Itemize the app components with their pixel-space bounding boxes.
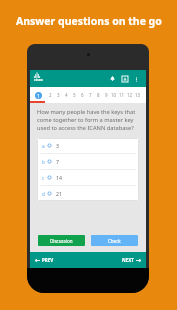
button[interactable]: NEXT	[120, 255, 143, 265]
staticText: d	[42, 191, 45, 197]
staticText: a	[42, 143, 45, 149]
staticText: 6	[81, 92, 84, 98]
button[interactable]: 12	[126, 87, 134, 103]
button[interactable]: Notifications	[106, 72, 119, 85]
staticText: 5	[73, 92, 76, 98]
staticText: Discussion	[50, 238, 73, 244]
staticText: 12	[127, 92, 133, 98]
staticText: Check	[108, 238, 121, 244]
staticText: cisco	[34, 77, 43, 82]
staticText: Answer questions on the go	[16, 14, 162, 28]
staticText: 8	[97, 92, 100, 98]
button[interactable]: 1	[31, 87, 46, 103]
button[interactable]: 10	[110, 87, 118, 103]
staticText: PREV	[42, 257, 54, 263]
button[interactable]: c	[37, 170, 139, 185]
button[interactable]: Check	[91, 235, 138, 246]
staticText: 10	[111, 92, 117, 98]
button[interactable]: Account	[119, 73, 131, 85]
staticText: 2	[49, 92, 52, 98]
staticText: c	[42, 175, 45, 181]
staticText: 7	[89, 92, 92, 98]
staticText: NEXT	[122, 257, 134, 263]
staticText: 13	[135, 92, 141, 98]
staticText: How many people have the keys that come …	[37, 108, 141, 132]
button[interactable]: 7	[86, 87, 94, 103]
staticText: 3	[57, 92, 60, 98]
button[interactable]: 6	[78, 87, 86, 103]
staticText: 7	[56, 158, 59, 165]
staticText: 4	[65, 92, 68, 98]
staticText: 11	[119, 92, 125, 98]
button[interactable]: a	[37, 138, 139, 153]
button[interactable]: 13	[134, 87, 142, 103]
staticText: 14	[56, 174, 62, 181]
button[interactable]: 9	[102, 87, 110, 103]
button[interactable]: 3	[54, 87, 62, 103]
button[interactable]: Discussion	[38, 235, 85, 246]
button[interactable]: 5	[70, 87, 78, 103]
button[interactable]: d	[37, 186, 139, 201]
staticText: 1	[37, 93, 40, 99]
button[interactable]: PREV	[33, 255, 56, 265]
staticText: 3	[56, 142, 59, 149]
button[interactable]: 2	[46, 87, 54, 103]
staticText: 21	[56, 190, 62, 197]
button[interactable]: 11	[118, 87, 126, 103]
staticText: b	[42, 159, 45, 165]
button[interactable]: 4	[62, 87, 70, 103]
button[interactable]: b	[37, 154, 139, 169]
button[interactable]: 8	[94, 87, 102, 103]
staticText: 9	[105, 92, 108, 98]
button[interactable]: More options	[131, 74, 141, 84]
